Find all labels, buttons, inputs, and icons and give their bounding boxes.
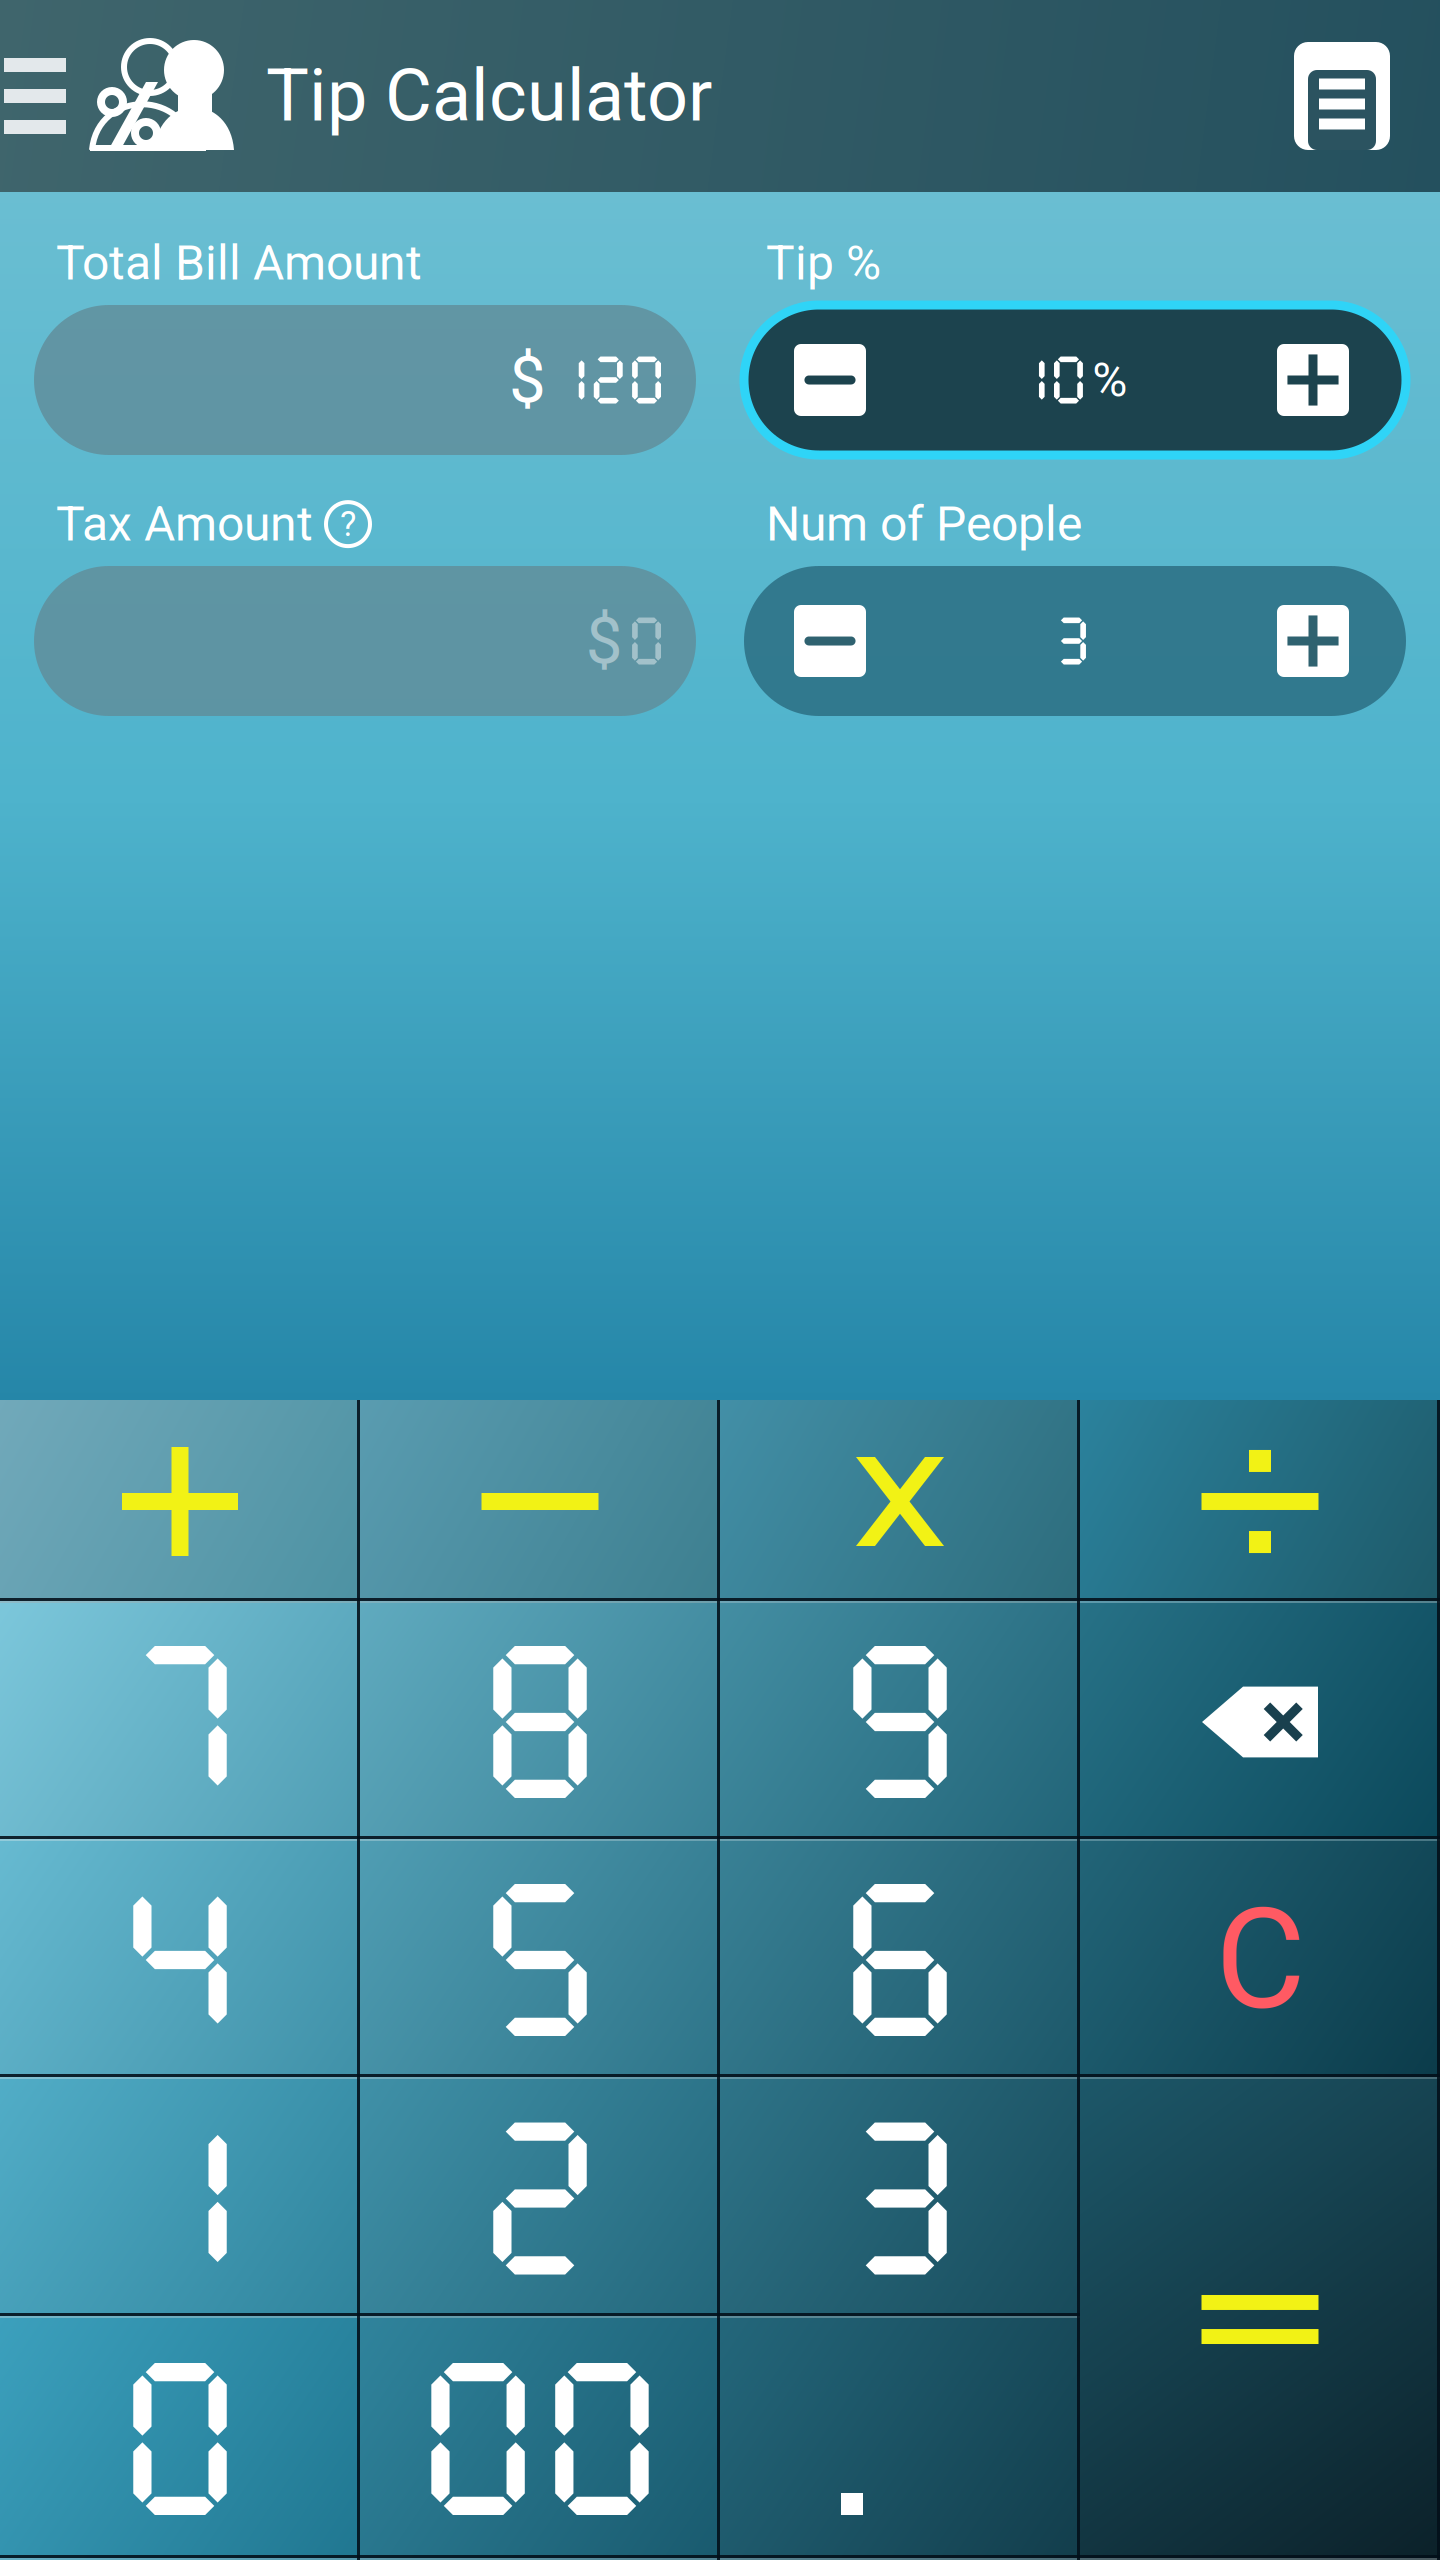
button[interactable]: Equals — [1080, 2079, 1440, 2560]
button[interactable]: Add — [0, 1400, 360, 1603]
button[interactable]: 8 — [360, 1603, 720, 1841]
staticText: ? — [340, 504, 356, 544]
button[interactable]: Total bill amount — [34, 305, 696, 455]
staticText: C — [1215, 1879, 1305, 2041]
button[interactable]: 5 — [360, 1841, 720, 2079]
button[interactable]: Subtract — [360, 1400, 720, 1603]
staticText: % — [1092, 352, 1127, 408]
button[interactable]: 6 — [720, 1841, 1080, 2079]
button[interactable]: Decrease number of people — [744, 566, 866, 716]
button[interactable]: Increase tip percent — [1277, 305, 1406, 455]
button[interactable]: Tax amount — [34, 566, 696, 716]
button[interactable]: 00 — [360, 2318, 720, 2560]
button[interactable]: 4 — [0, 1841, 360, 2079]
staticText: Tax Amount — [56, 496, 313, 552]
button[interactable]: 2 — [360, 2079, 720, 2318]
button[interactable]: Backspace — [1080, 1603, 1440, 1841]
button[interactable]: Clear — [1080, 1841, 1440, 2079]
button[interactable]: 3 — [720, 2079, 1080, 2318]
button[interactable]: What is tax amount — [326, 502, 370, 546]
button[interactable]: Multiply — [720, 1400, 1080, 1603]
staticText: Num of People — [766, 496, 1082, 552]
button[interactable]: 9 — [720, 1603, 1080, 1841]
staticText: Tip % — [766, 235, 881, 291]
button[interactable]: decimal point — [720, 2318, 1080, 2560]
button[interactable]: Decrease tip percent — [744, 305, 866, 455]
staticText: $ — [586, 603, 623, 679]
staticText: Tip Calculator — [266, 54, 712, 138]
button[interactable]: Menu — [0, 0, 66, 192]
button[interactable]: Divide — [1080, 1400, 1440, 1603]
staticText: $ — [509, 342, 546, 418]
button[interactable]: History — [1294, 42, 1440, 150]
button[interactable]: Increase number of people — [1277, 566, 1406, 716]
staticText: Total Bill Amount — [56, 235, 422, 291]
button[interactable]: 0 — [0, 2318, 360, 2560]
button[interactable]: 7 — [0, 1603, 360, 1841]
button[interactable]: 1 — [0, 2079, 360, 2318]
